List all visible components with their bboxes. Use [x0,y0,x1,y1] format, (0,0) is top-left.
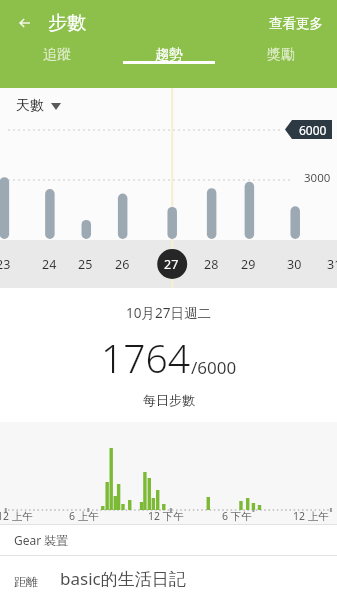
staticText: 距離 [14,574,38,589]
button[interactable]: 29 [0,240,337,288]
staticText: 24 [42,256,57,273]
button[interactable]: 28 [0,240,337,288]
staticText: basic的生活日記 [60,567,337,590]
staticText: 趨勢 [155,46,183,64]
staticText: 31 [327,256,337,273]
staticText: 查看更多 [269,15,323,32]
staticText: 6 下午 [222,509,252,523]
staticText: 28 [204,256,219,273]
staticText: 每日步數 [143,392,195,408]
staticText: Gear 裝置 [14,532,69,548]
staticText: 25 [78,256,93,273]
staticText: 3000 [304,170,331,186]
button[interactable]: 30 [0,240,337,288]
button[interactable]: 趨勢 [113,46,225,64]
staticText: 獎勵 [267,46,295,64]
staticText: 10月27日週二 [126,304,211,322]
staticText: 23 [0,256,11,273]
staticText: 30 [287,256,302,273]
staticText: 步數 [48,11,86,35]
button[interactable]: 10月27日週二 [0,288,337,418]
staticText: 6 上午 [69,509,99,523]
button[interactable]: 31 [0,240,337,288]
button[interactable]: 天數 [14,94,63,118]
staticText: 26 [115,256,130,273]
button[interactable]: 24 [0,240,337,288]
button[interactable]: 獎勵 [225,46,337,64]
button[interactable]: 追蹤 [0,46,113,64]
staticText: 27 [164,256,179,273]
staticText: 天數 [16,97,44,115]
button[interactable]: Back [10,7,42,39]
staticText: 12 上午 [293,509,329,523]
button[interactable]: 查看更多 [265,11,327,36]
button[interactable]: Gear 裝置 [0,525,337,555]
staticText: 12 下午 [148,509,184,523]
button[interactable]: 距離 [0,556,337,600]
staticText: 12 上午 [0,509,33,523]
button[interactable]: 25 [0,240,337,288]
staticText: 29 [241,256,256,273]
button[interactable]: 27 [0,240,337,288]
button[interactable]: 23 [0,240,337,288]
staticText: 追蹤 [43,46,71,64]
button[interactable]: 26 [0,240,337,288]
staticText: /6000 [191,356,237,379]
staticText: 1764 [101,331,191,384]
staticText: 6000 [299,122,327,138]
